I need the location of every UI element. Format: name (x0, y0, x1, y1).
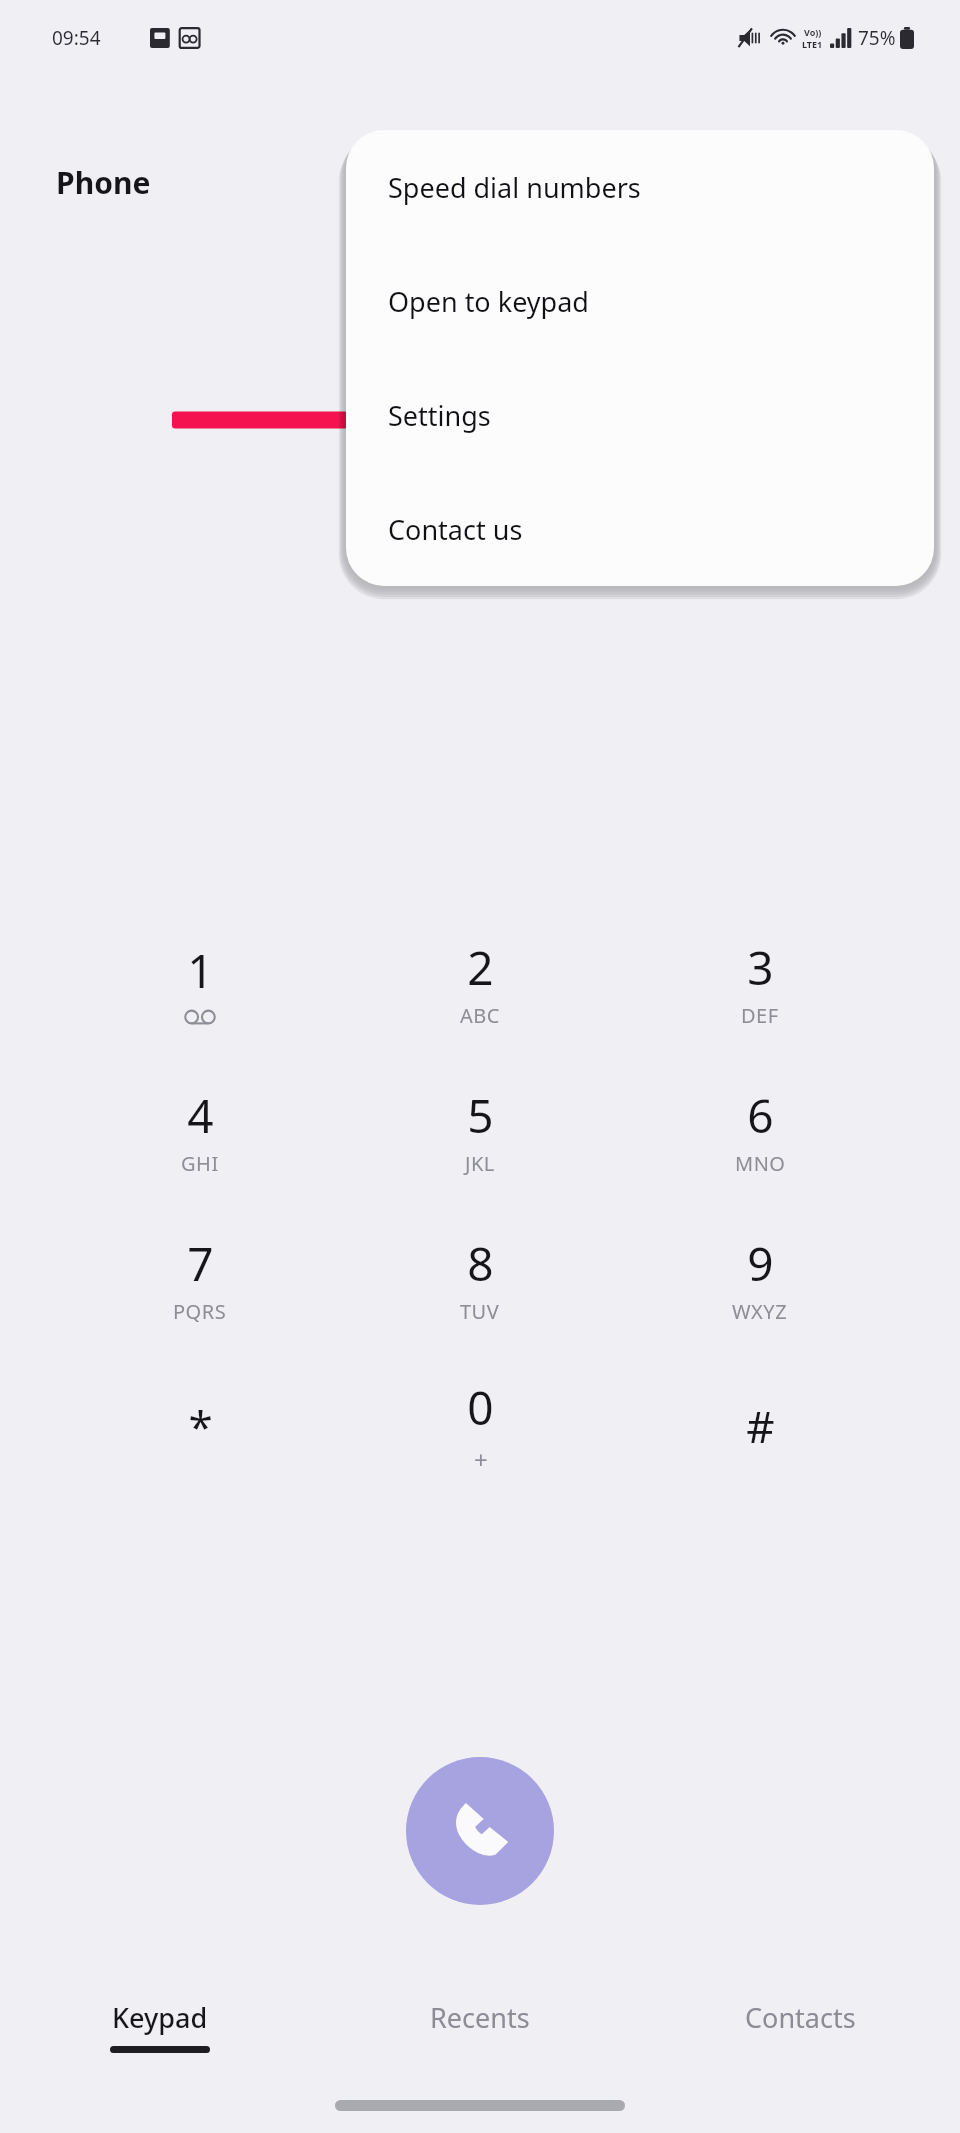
staticText: Open to keypad (388, 283, 589, 320)
staticText: 09:54 (52, 25, 101, 51)
staticText: TUV (460, 1298, 500, 1325)
staticText: DEF (741, 1002, 779, 1029)
staticText: LTE1 (802, 38, 823, 50)
staticText: Contact us (388, 511, 523, 548)
staticText: GHI (181, 1150, 219, 1177)
button[interactable]: * (60, 1352, 340, 1500)
button[interactable]: # (620, 1352, 900, 1500)
button[interactable]: Contacts (640, 1985, 960, 2081)
staticText: # (746, 1396, 775, 1456)
button[interactable]: Speed dial numbers (346, 130, 934, 244)
staticText: 1 (187, 939, 214, 1002)
staticText: Contacts (745, 1999, 856, 2036)
button[interactable]: 8 (340, 1204, 620, 1352)
staticText: Settings (388, 397, 491, 434)
button[interactable]: Call (406, 1757, 554, 1905)
staticText: Phone (56, 162, 151, 203)
staticText: 2 (467, 936, 494, 999)
staticText: * (188, 1396, 213, 1456)
button[interactable]: Keypad (0, 1985, 320, 2081)
staticText: 8 (467, 1232, 494, 1295)
button[interactable]: 5 (340, 1056, 620, 1204)
staticText: + (474, 1443, 488, 1476)
button[interactable]: 9 (620, 1204, 900, 1352)
button[interactable]: 0 (340, 1352, 620, 1500)
button[interactable]: Recents (320, 1985, 640, 2081)
button[interactable]: Settings (346, 358, 934, 472)
staticText: WXYZ (732, 1298, 788, 1325)
staticText: 3 (747, 936, 774, 999)
staticText: Recents (430, 1999, 530, 2036)
button[interactable]: 4 (60, 1056, 340, 1204)
staticText: MNO (735, 1150, 786, 1177)
staticText: 4 (187, 1084, 214, 1147)
button[interactable]: Contact us (346, 472, 934, 586)
staticText: 6 (747, 1084, 774, 1147)
staticText: Vo)) (804, 26, 822, 38)
staticText: PQRS (173, 1298, 227, 1325)
staticText: 9 (747, 1232, 774, 1295)
staticText: JKL (465, 1150, 495, 1177)
button[interactable]: 6 (620, 1056, 900, 1204)
button[interactable]: 3 (620, 908, 900, 1056)
staticText: 5 (467, 1084, 494, 1147)
staticText: 7 (187, 1232, 214, 1295)
staticText: Keypad (112, 1999, 208, 2036)
button[interactable]: 1 (60, 908, 340, 1056)
button[interactable]: Open to keypad (346, 244, 934, 358)
staticText: 0 (467, 1376, 494, 1439)
staticText: ABC (460, 1002, 500, 1029)
button[interactable]: 7 (60, 1204, 340, 1352)
staticText: Speed dial numbers (388, 169, 641, 206)
staticText: 75% (858, 25, 896, 51)
button[interactable]: 2 (340, 908, 620, 1056)
